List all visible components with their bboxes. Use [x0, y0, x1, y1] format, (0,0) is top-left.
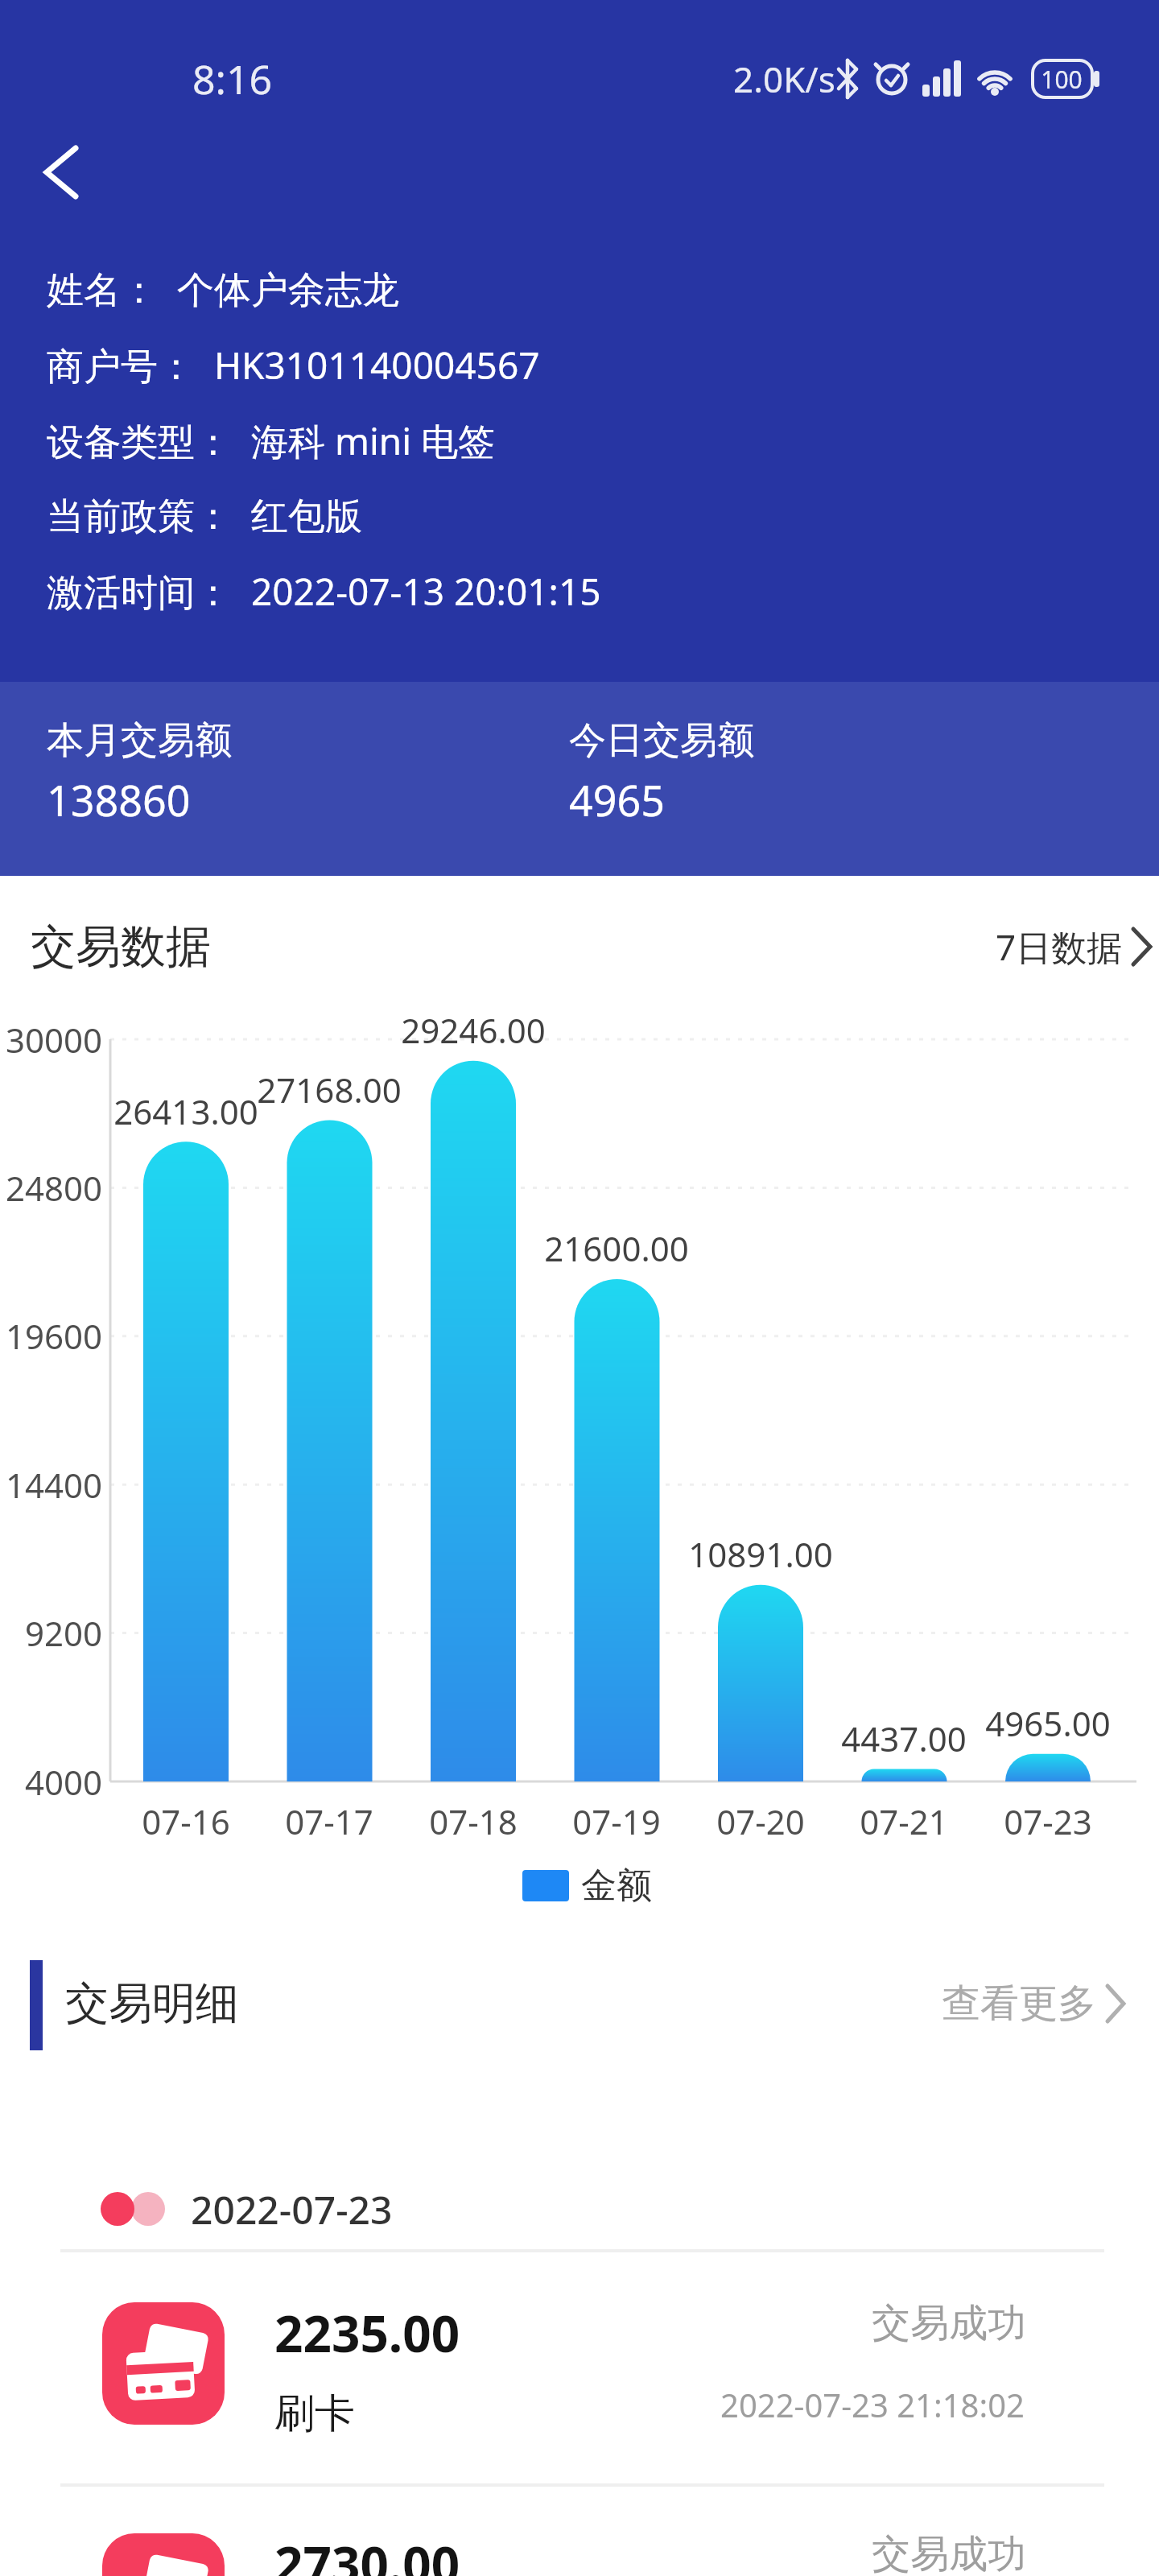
staticText: 8:16: [192, 52, 273, 106]
staticText: 24800: [6, 1165, 103, 1211]
staticText: 今日交易额: [569, 717, 754, 764]
staticText: 2235.00: [274, 2299, 460, 2367]
staticText: 2022-07-23 21:18:02: [720, 2383, 1025, 2426]
staticText: 4965: [569, 771, 665, 828]
staticText: 交易成功: [872, 2530, 1026, 2576]
staticText: 交易明细: [65, 1976, 239, 2031]
staticText: 4437.00: [841, 1715, 967, 1761]
button[interactable]: 2235.00: [0, 2262, 1159, 2479]
staticText: 刷卡: [274, 2388, 355, 2439]
staticText: 当前政策： 红包版: [47, 489, 362, 540]
staticText: 07-20: [716, 1798, 805, 1844]
staticText: 29246.00: [401, 1007, 546, 1053]
staticText: 金额: [581, 1864, 652, 1908]
staticText: 本月交易额: [47, 717, 232, 764]
staticText: 26413.00: [113, 1088, 258, 1134]
staticText: 商户号： HK3101140004567: [47, 340, 540, 390]
staticText: 100: [1041, 63, 1083, 96]
staticText: 07-21: [860, 1798, 948, 1844]
staticText: 21600.00: [544, 1225, 689, 1271]
staticText: 07-17: [285, 1798, 373, 1844]
staticText: 激活时间： 2022-07-13 20:01:15: [47, 566, 601, 617]
staticText: 30000: [6, 1017, 103, 1063]
button[interactable]: 2730.00: [0, 2493, 1159, 2576]
staticText: 2730.00: [274, 2530, 460, 2576]
staticText: 27168.00: [257, 1067, 402, 1113]
staticText: 07-19: [572, 1798, 661, 1844]
staticText: 交易成功: [872, 2299, 1026, 2347]
staticText: 2.0K/s: [733, 55, 835, 103]
button[interactable]: 7日数据: [930, 914, 1153, 979]
staticText: 交易数据: [31, 919, 211, 976]
staticText: 7日数据: [996, 923, 1123, 971]
staticText: 4000: [25, 1759, 103, 1805]
staticText: 4965.00: [985, 1700, 1111, 1746]
staticText: 07-23: [1004, 1798, 1092, 1844]
staticText: 07-18: [429, 1798, 518, 1844]
button[interactable]: 查看更多: [901, 1971, 1127, 2036]
staticText: 138860: [47, 771, 191, 828]
staticText: 2022-07-23: [191, 2183, 393, 2235]
staticText: 姓名： 个体户余志龙: [47, 263, 399, 314]
staticText: 07-16: [142, 1798, 230, 1844]
staticText: 查看更多: [942, 1979, 1096, 2028]
staticText: 14400: [6, 1462, 103, 1508]
staticText: 设备类型： 海科 mini 电签: [47, 415, 496, 466]
staticText: 19600: [6, 1313, 103, 1359]
staticText: 9200: [25, 1610, 103, 1656]
staticText: 10891.00: [688, 1531, 833, 1577]
button[interactable]: [24, 124, 105, 221]
